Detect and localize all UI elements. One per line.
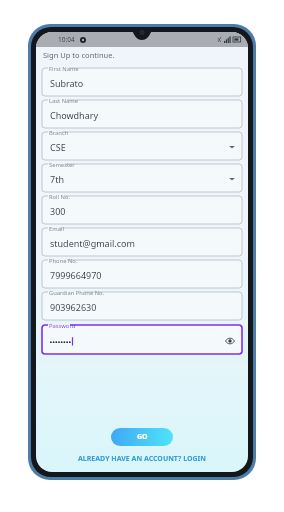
staticText: Password: [49, 322, 76, 330]
staticText: Email: [49, 225, 64, 233]
staticText: Roll No.: [49, 193, 71, 201]
button[interactable]: Email: [42, 228, 242, 256]
staticText: Chowdhary: [50, 109, 99, 121]
button[interactable]: Semester: [42, 164, 242, 192]
button[interactable]: Guardian Phone No.: [42, 292, 242, 320]
staticText: Subrato: [50, 77, 84, 89]
button[interactable]: Toggle password visibility: [224, 335, 236, 347]
staticText: Guardian Phone No.: [49, 289, 105, 297]
staticText: 903962630: [50, 301, 97, 313]
staticText: Phone No.: [49, 257, 78, 265]
staticText: Branch: [49, 129, 69, 137]
staticText: Last Name: [49, 97, 79, 105]
button[interactable]: Roll No.: [42, 196, 242, 224]
staticText: Sign Up to continue.: [43, 50, 115, 60]
staticText: Semester: [49, 161, 75, 169]
button[interactable]: Password: [42, 325, 242, 354]
staticText: CSE: [50, 141, 66, 153]
staticText: 7th: [50, 173, 64, 185]
staticText: ALREADY HAVE AN ACCOUNT? LOGIN: [78, 454, 206, 464]
staticText: First Name: [49, 65, 79, 73]
staticText: 7999664970: [50, 269, 102, 281]
button[interactable]: ALREADY HAVE AN ACCOUNT? LOGIN: [36, 454, 248, 464]
button[interactable]: Branch: [42, 132, 242, 160]
staticText: 10:04: [58, 35, 75, 44]
staticText: student@gmail.com: [50, 237, 135, 249]
button[interactable]: Phone No.: [42, 260, 242, 288]
button[interactable]: First Name: [42, 68, 242, 96]
staticText: 300: [50, 205, 66, 217]
button[interactable]: GO: [111, 428, 173, 446]
staticText: GO: [137, 432, 148, 442]
button[interactable]: Last Name: [42, 100, 242, 128]
